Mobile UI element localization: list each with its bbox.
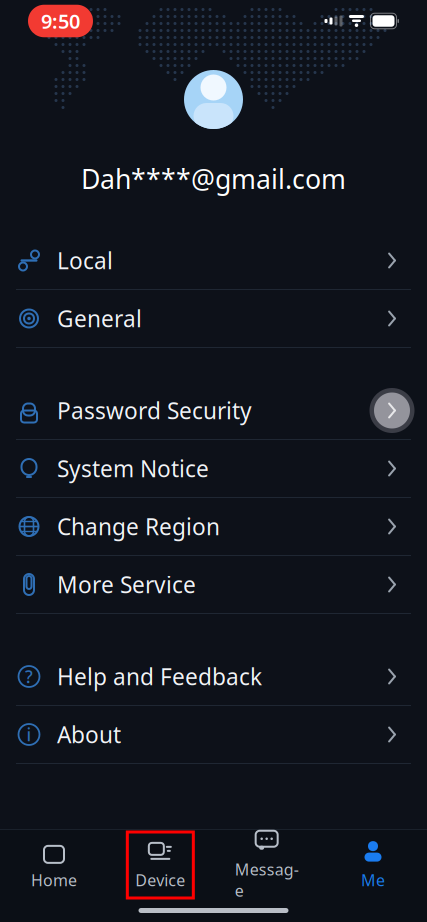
staticText: Help and Feedback: [57, 661, 262, 691]
button[interactable]: More Service: [0, 556, 427, 613]
staticText: Dah****@gmail.com: [81, 161, 346, 196]
button[interactable]: Change Region: [0, 498, 427, 555]
staticText: Device: [135, 869, 185, 891]
staticText: Home: [31, 869, 77, 891]
button[interactable]: Device: [127, 832, 193, 898]
button[interactable]: Me: [340, 832, 406, 898]
button[interactable]: System Notice: [0, 440, 427, 497]
staticText: i: [26, 723, 31, 746]
staticText: 9:50: [41, 8, 80, 34]
button[interactable]: ?: [0, 648, 427, 705]
staticText: Change Region: [57, 511, 220, 541]
button[interactable]: Home: [21, 832, 87, 898]
button[interactable]: i: [0, 706, 427, 763]
staticText: General: [57, 303, 142, 333]
button[interactable]: Message: [234, 832, 300, 898]
button[interactable]: Local: [0, 232, 427, 289]
staticText: More Service: [57, 569, 196, 599]
staticText: ?: [25, 665, 33, 688]
staticText: Password Security: [57, 395, 252, 425]
button[interactable]: General: [0, 290, 427, 347]
staticText: Me: [361, 869, 385, 891]
staticText: System Notice: [57, 453, 209, 483]
staticText: About: [57, 719, 121, 749]
staticText: Message: [235, 859, 299, 901]
staticText: Local: [57, 245, 113, 275]
button[interactable]: Password Security: [0, 382, 427, 439]
